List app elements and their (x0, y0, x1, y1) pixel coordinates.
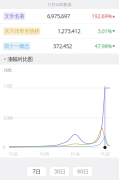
staticText: 7日 (32, 168, 40, 175)
staticText: 3.01% (97, 28, 111, 35)
staticText: 47.98% (94, 43, 111, 50)
staticText: 双十一概念 (4, 43, 29, 50)
staticText: 东方传奇言情榜 (4, 28, 39, 35)
staticText: 11-02 (8, 151, 17, 157)
staticText: 5,000 (3, 115, 12, 121)
staticText: 0 (3, 144, 5, 150)
staticText: 11-09 (39, 151, 48, 157)
staticText: 30日 (54, 168, 65, 175)
staticText: 372,452 (53, 43, 72, 50)
button[interactable]: 文学名著 (0, 9, 119, 24)
staticText: 1.0万 (3, 83, 12, 89)
button[interactable]: 90日 (73, 167, 92, 176)
staticText: 11-16 (70, 151, 79, 157)
staticText: 192.69% (91, 13, 111, 20)
staticText: 11-22 (100, 151, 109, 157)
button[interactable]: 30日 (50, 167, 69, 176)
staticText: 文学名著 (4, 13, 24, 20)
staticText: 6,975,697 (47, 13, 70, 20)
staticText: 涨幅对比图 (8, 56, 33, 62)
staticText: 指数 (4, 68, 12, 72)
staticText: 90日 (77, 168, 88, 175)
staticText: 1,273,412 (57, 28, 80, 35)
button[interactable]: 双十一概念 (0, 39, 119, 54)
staticText: 11月22日数据 (47, 2, 71, 7)
button[interactable]: 东方传奇言情榜 (0, 24, 119, 39)
button[interactable]: 7日 (27, 167, 46, 176)
